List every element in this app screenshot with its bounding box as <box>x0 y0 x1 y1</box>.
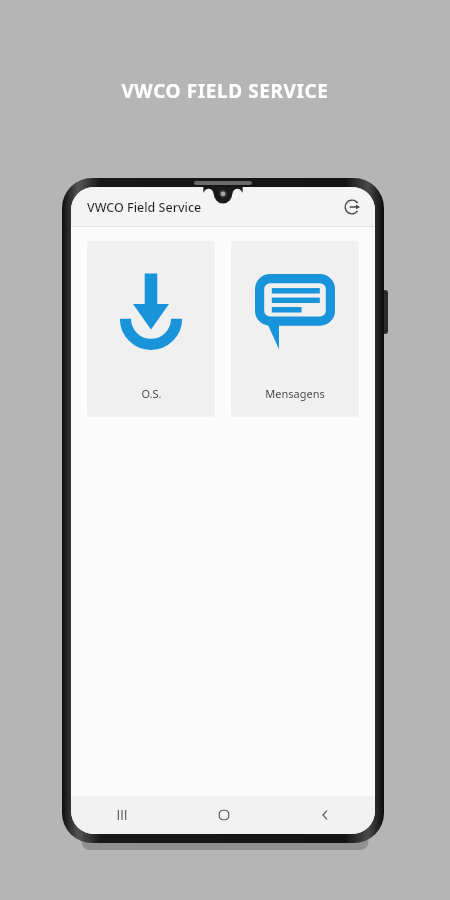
button[interactable]: Logout <box>335 190 369 224</box>
staticText: Mensagens <box>265 386 325 401</box>
staticText: VWCO FIELD SERVICE <box>121 78 329 104</box>
button[interactable]: Recent apps <box>71 796 173 834</box>
staticText: O.S. <box>141 386 162 401</box>
button[interactable]: Mensagens <box>231 241 359 417</box>
staticText: VWCO Field Service <box>87 199 202 216</box>
button[interactable]: Back <box>274 796 375 834</box>
button[interactable]: Home <box>173 796 274 834</box>
button[interactable]: O.S. <box>87 241 215 417</box>
